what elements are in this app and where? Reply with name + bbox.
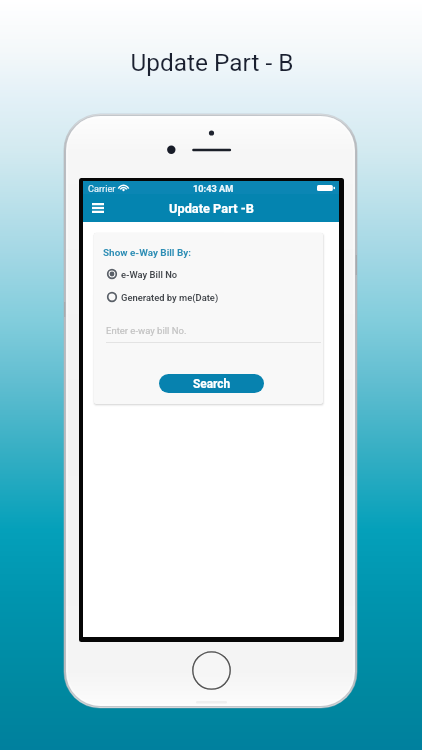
button[interactable]: Search [159,374,264,393]
staticText: Update Part -B [169,201,254,216]
staticText: Generated by me(Date) [121,292,219,303]
staticText: Search [193,377,231,391]
button[interactable]: Open navigation menu [88,197,108,219]
staticText: Enter e-way bill No. [106,325,187,336]
staticText: Update Part - B [1,48,422,77]
staticText: 10:43 AM [193,183,234,194]
staticText: Show e-Way Bill By: [103,247,192,259]
staticText: Carrier [88,183,116,194]
button[interactable]: Generated by me(Date) [101,289,221,305]
button[interactable]: e-Way Bill No [101,266,180,282]
staticText: e-Way Bill No [121,269,178,280]
